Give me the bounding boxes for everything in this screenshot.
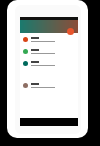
button[interactable] <box>20 57 78 69</box>
button[interactable] <box>20 45 78 57</box>
button[interactable] <box>20 33 78 45</box>
button[interactable]: Compose <box>67 28 74 35</box>
button[interactable] <box>20 79 78 91</box>
